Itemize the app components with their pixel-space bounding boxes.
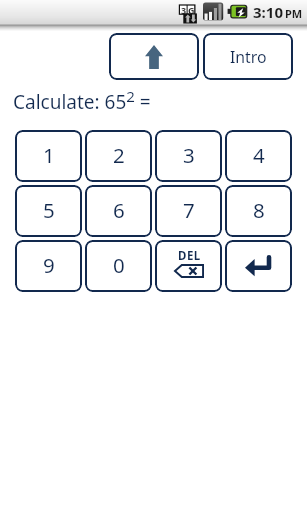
staticText: DEL bbox=[178, 248, 201, 264]
button[interactable]: 6 bbox=[85, 185, 152, 237]
staticText: 3 bbox=[181, 4, 187, 16]
button[interactable]: Enter bbox=[225, 240, 292, 292]
button[interactable]: 1 bbox=[15, 130, 82, 182]
button[interactable]: 4 bbox=[225, 130, 292, 182]
staticText: 3 bbox=[183, 141, 195, 169]
staticText: G bbox=[188, 4, 195, 16]
button[interactable]: 8 bbox=[225, 185, 292, 237]
staticText: 9 bbox=[43, 251, 55, 279]
button[interactable]: Intro bbox=[203, 33, 293, 80]
staticText: 4 bbox=[253, 141, 265, 169]
staticText: Intro bbox=[230, 46, 267, 68]
button[interactable]: Delete bbox=[155, 240, 222, 292]
staticText: 0 bbox=[113, 251, 125, 279]
button[interactable]: 3 bbox=[155, 130, 222, 182]
button[interactable]: 2 bbox=[85, 130, 152, 182]
staticText: Calculate: 652 = bbox=[13, 86, 151, 115]
staticText: 8 bbox=[253, 196, 265, 224]
button[interactable]: 0 bbox=[85, 240, 152, 292]
staticText: 7 bbox=[183, 196, 195, 224]
button[interactable]: 7 bbox=[155, 185, 222, 237]
button[interactable]: Up bbox=[109, 33, 199, 80]
button[interactable]: 5 bbox=[15, 185, 82, 237]
staticText: 3:10 bbox=[253, 2, 283, 22]
button[interactable]: 9 bbox=[15, 240, 82, 292]
staticText: 2 bbox=[113, 141, 125, 169]
staticText: 1 bbox=[43, 141, 55, 169]
staticText: 5 bbox=[43, 196, 55, 224]
staticText: 6 bbox=[113, 196, 125, 224]
staticText: PM bbox=[285, 6, 303, 21]
